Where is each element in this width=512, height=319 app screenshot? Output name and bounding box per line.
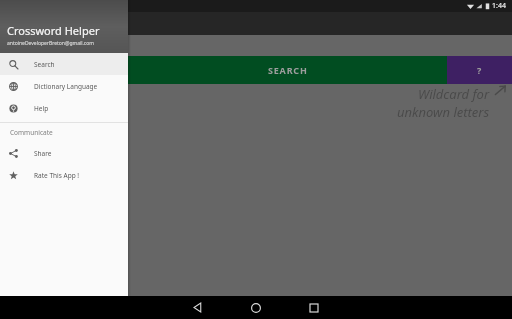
staticText: Search: [34, 60, 55, 69]
staticText: Dictionary Language: [34, 82, 98, 91]
staticText: Crossword Helper: [7, 23, 100, 38]
button[interactable]: ?: [447, 56, 512, 84]
button[interactable]: Rate This App !: [0, 164, 128, 186]
staticText: SEARCH: [268, 64, 308, 76]
staticText: unknown letters: [397, 103, 490, 121]
staticText: antoineDeveloperBreton@gmail.com: [7, 40, 94, 47]
button[interactable]: Crossword Helper: [0, 0, 128, 53]
staticText: Help: [34, 104, 49, 113]
button[interactable]: Back: [182, 296, 214, 319]
staticText: 1:44: [492, 1, 506, 11]
button[interactable]: Help: [0, 97, 128, 119]
button[interactable]: Search: [0, 53, 128, 75]
button[interactable]: Home: [240, 296, 272, 319]
staticText: ?: [477, 64, 482, 76]
staticText: Communicate: [10, 128, 53, 137]
staticText: Share: [34, 149, 52, 158]
staticText: Wildcard for: [418, 85, 490, 103]
button[interactable]: Dictionary Language: [0, 75, 128, 97]
staticText: Rate This App !: [34, 171, 80, 180]
button[interactable]: Recent apps: [298, 296, 330, 319]
button[interactable]: Share: [0, 142, 128, 164]
button[interactable]: SEARCH: [128, 56, 447, 84]
